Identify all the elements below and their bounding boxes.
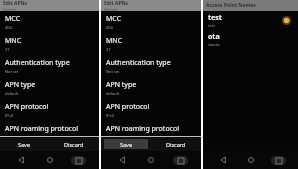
staticText: Discard [64, 141, 84, 148]
button[interactable]: Recents [270, 152, 286, 168]
staticText: Not set [106, 69, 120, 74]
button[interactable]: Recents [172, 152, 188, 168]
staticText: Edit APNs [3, 0, 28, 7]
button[interactable]: MNC [0, 33, 99, 55]
staticText: APN type [106, 80, 137, 90]
button[interactable]: MCC [101, 11, 201, 33]
button[interactable]: Save [104, 139, 148, 149]
staticText: ota [208, 32, 220, 42]
staticText: Not set [5, 69, 19, 74]
button[interactable]: MCC [0, 11, 99, 33]
staticText: Save [18, 141, 31, 148]
button[interactable]: Recents [70, 152, 86, 168]
staticText: Access Point Names [206, 2, 256, 9]
staticText: Save [120, 141, 133, 148]
staticText: Discard [166, 141, 186, 148]
staticText: APN roaming protocol [5, 124, 79, 133]
staticText: MCC [5, 14, 21, 24]
staticText: default [106, 91, 120, 96]
staticText: 27 [106, 47, 111, 52]
staticText: Internet [104, 7, 118, 11]
staticText: test [208, 23, 216, 28]
button[interactable]: APN type [101, 77, 201, 99]
staticText: default [5, 91, 19, 96]
button[interactable]: APN roaming protocol [101, 121, 201, 136]
button[interactable]: Authentication type [101, 55, 201, 77]
staticText: APN protocol [106, 102, 150, 112]
button[interactable]: APN roaming protocol [0, 121, 99, 136]
staticText: APN type [5, 80, 36, 90]
staticText: MCC [106, 14, 122, 24]
staticText: MNC [5, 36, 22, 46]
button[interactable]: MNC [101, 33, 201, 55]
button[interactable]: Discard [49, 137, 99, 151]
button[interactable]: Home [42, 152, 58, 168]
staticText: Edit APNs [104, 0, 129, 7]
button[interactable]: ota [203, 30, 298, 49]
staticText: Authentication type [5, 58, 70, 68]
staticText: test [208, 13, 222, 23]
button[interactable]: Discard [151, 137, 201, 151]
staticText: 404 [106, 25, 113, 30]
staticText: Authentication type [106, 58, 171, 68]
staticText: Internet [3, 7, 17, 11]
button[interactable]: Save [3, 139, 46, 149]
staticText: 404 [5, 25, 12, 30]
button[interactable]: Back [13, 152, 29, 168]
button[interactable]: APN protocol [0, 99, 99, 121]
button[interactable]: Select test [281, 15, 292, 26]
button[interactable]: test [203, 11, 298, 30]
button[interactable]: Home [143, 152, 159, 168]
staticText: APN protocol [5, 102, 49, 112]
staticText: IPv4 [106, 113, 115, 118]
button[interactable]: Home [243, 152, 259, 168]
button[interactable]: APN type [0, 77, 99, 99]
button[interactable]: Back [215, 152, 231, 168]
staticText: viaota [208, 42, 220, 47]
staticText: APN roaming protocol [106, 124, 180, 133]
button[interactable]: Back [114, 152, 130, 168]
button[interactable]: APN protocol [101, 99, 201, 121]
staticText: IPv4 [5, 113, 14, 118]
button[interactable]: Authentication type [0, 55, 99, 77]
staticText: 27 [5, 47, 10, 52]
staticText: MNC [106, 36, 123, 46]
